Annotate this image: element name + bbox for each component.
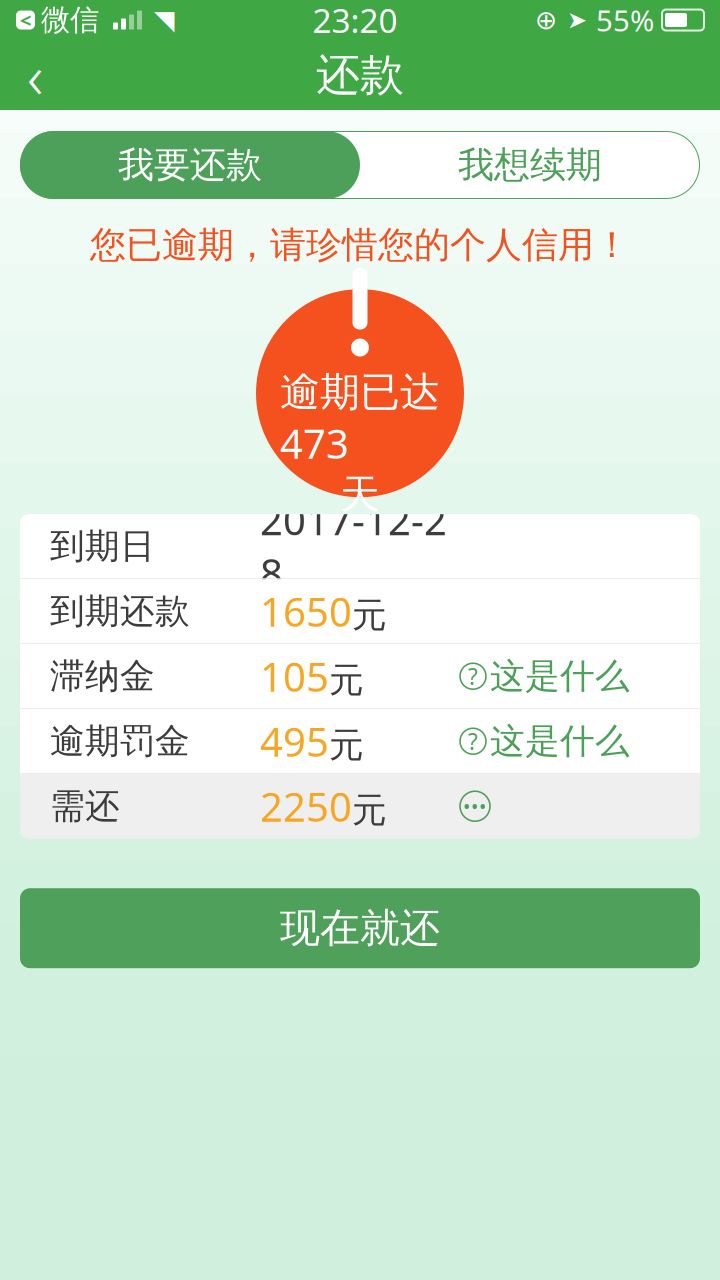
staticText: < [20, 7, 31, 33]
staticText: ? [468, 726, 478, 756]
staticText: 滞纳金 [50, 655, 155, 697]
staticText: ⊕ [535, 5, 557, 35]
button[interactable]: 返回 [0, 42, 70, 108]
button[interactable]: ? [460, 655, 630, 697]
staticText: 元 [329, 724, 364, 766]
staticText: 55% [596, 0, 654, 39]
staticText: 我要还款 [118, 143, 262, 187]
staticText: 495 [260, 715, 329, 768]
staticText: 您已逾期，请珍惜您的个人信用！ [90, 223, 630, 267]
button[interactable]: 更多 [460, 791, 490, 821]
staticText: 现在就还 [280, 904, 440, 953]
staticText: 元 [352, 594, 387, 636]
staticText: 微信 [41, 2, 99, 38]
staticText: 1650 [260, 585, 352, 638]
staticText: 还款 [316, 48, 404, 102]
staticText: 元 [329, 659, 364, 701]
staticText: 2250 [260, 780, 352, 833]
staticText: 逾期罚金 [50, 720, 190, 762]
staticText: 元 [352, 789, 387, 831]
button[interactable]: 现在就还 [20, 888, 700, 968]
staticText: ➤ [567, 6, 587, 34]
staticText: 这是什么 [490, 720, 630, 762]
staticText: ◥ [154, 5, 175, 35]
staticText: 2017-12-28 [260, 493, 447, 599]
staticText: 逾期已达473 [280, 367, 440, 470]
button[interactable]: 我想续期 [360, 131, 700, 199]
staticText: ••• [463, 793, 487, 819]
staticText: 23:20 [312, 0, 397, 42]
staticText: 到期还款 [50, 590, 190, 632]
staticText: ? [468, 661, 478, 691]
staticText: 105 [260, 650, 329, 703]
staticText: 到期日 [50, 525, 155, 567]
button[interactable]: 我要还款 [20, 131, 360, 199]
staticText: 需还 [50, 785, 120, 827]
staticText: 这是什么 [490, 655, 630, 697]
staticText: ‹ [27, 34, 43, 116]
staticText: 我想续期 [458, 143, 602, 187]
button[interactable]: ? [460, 720, 630, 762]
staticText: 天 [340, 470, 380, 519]
